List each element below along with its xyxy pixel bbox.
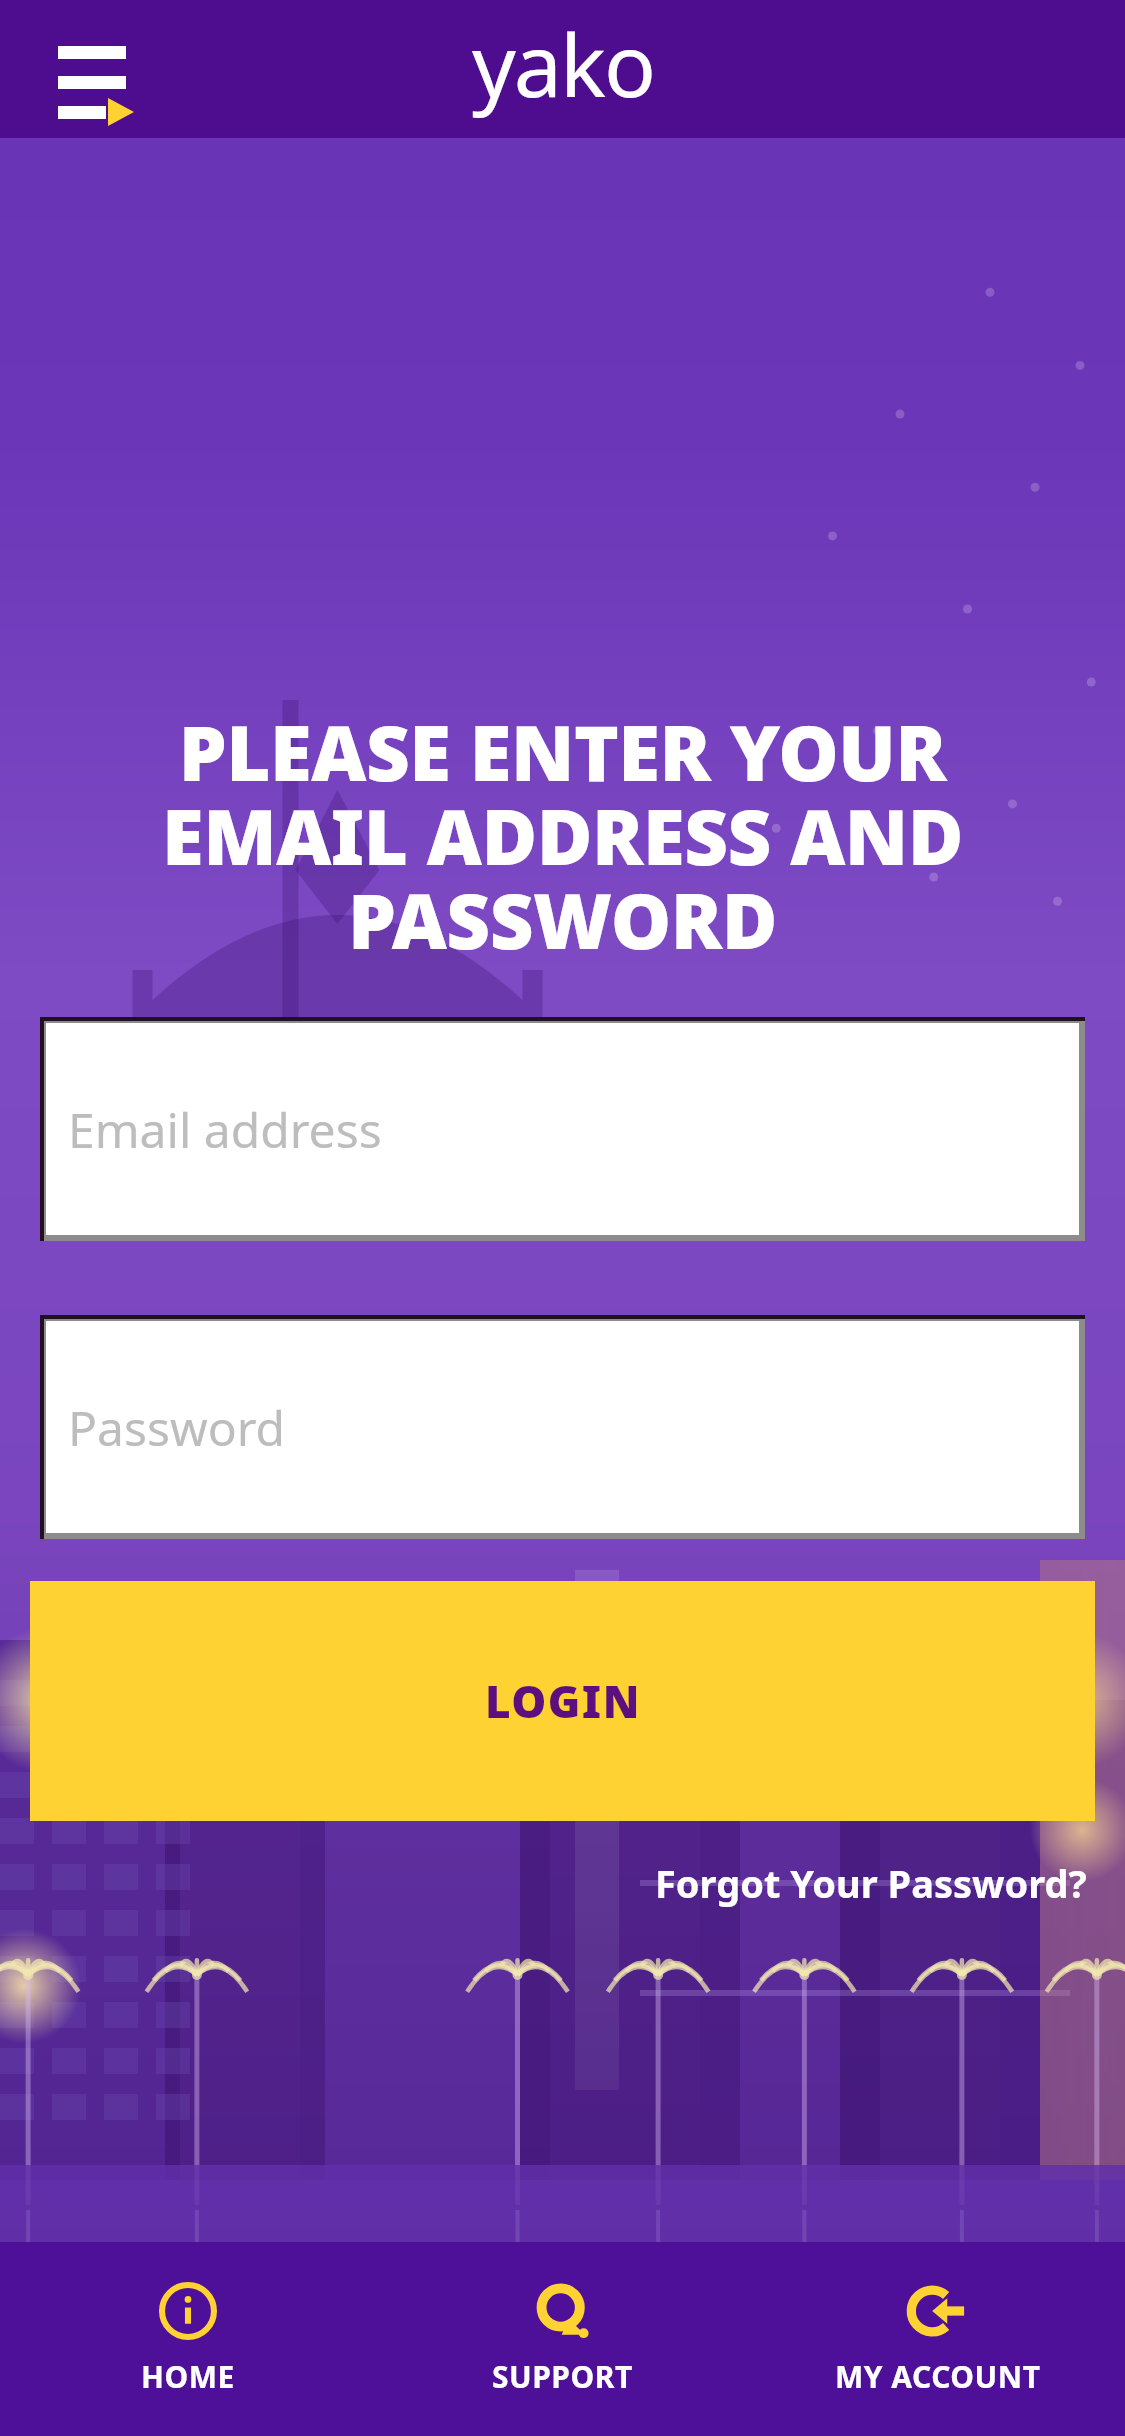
staticText: LOGIN [485, 1671, 641, 1731]
staticText: HOME [141, 2356, 235, 2397]
staticText: Email address [68, 1097, 382, 1162]
button[interactable]: SUPPORT [375, 2272, 750, 2407]
staticText: Password [68, 1395, 286, 1460]
button[interactable]: Forgot Your Password? [651, 1851, 1091, 1915]
staticText: MY ACCOUNT [835, 2356, 1041, 2397]
button[interactable]: MY ACCOUNT [750, 2272, 1125, 2407]
staticText: SUPPORT [492, 2356, 633, 2397]
button[interactable]: Menu [40, 30, 148, 110]
staticText: yako [472, 5, 655, 122]
button[interactable]: HOME [0, 2272, 375, 2407]
staticText: PLEASE ENTER YOUR EMAIL ADDRESS AND PASS… [56, 700, 1069, 971]
button[interactable]: Password [40, 1315, 1085, 1539]
button[interactable]: Email address [40, 1017, 1085, 1241]
staticText: Forgot Your Password? [655, 1857, 1087, 1909]
button[interactable]: LOGIN [30, 1581, 1095, 1821]
button[interactable]: Yako Casino [423, 5, 703, 129]
